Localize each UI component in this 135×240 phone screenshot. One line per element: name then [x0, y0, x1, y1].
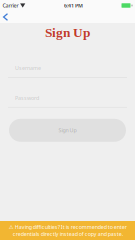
- staticText: Carrier: [2, 2, 18, 9]
- staticText: 6:41 PM: [64, 2, 83, 9]
- staticText: Sign Up: [45, 25, 90, 40]
- staticText: Username: [15, 64, 41, 72]
- staticText: Sign Up: [58, 127, 76, 134]
- staticText: Password: [15, 94, 39, 101]
- button[interactable]: Sign Up: [9, 119, 126, 142]
- staticText: ⚠ Having difficulties? It is recommended…: [8, 223, 126, 238]
- button[interactable]: Back: [0, 11, 15, 23]
